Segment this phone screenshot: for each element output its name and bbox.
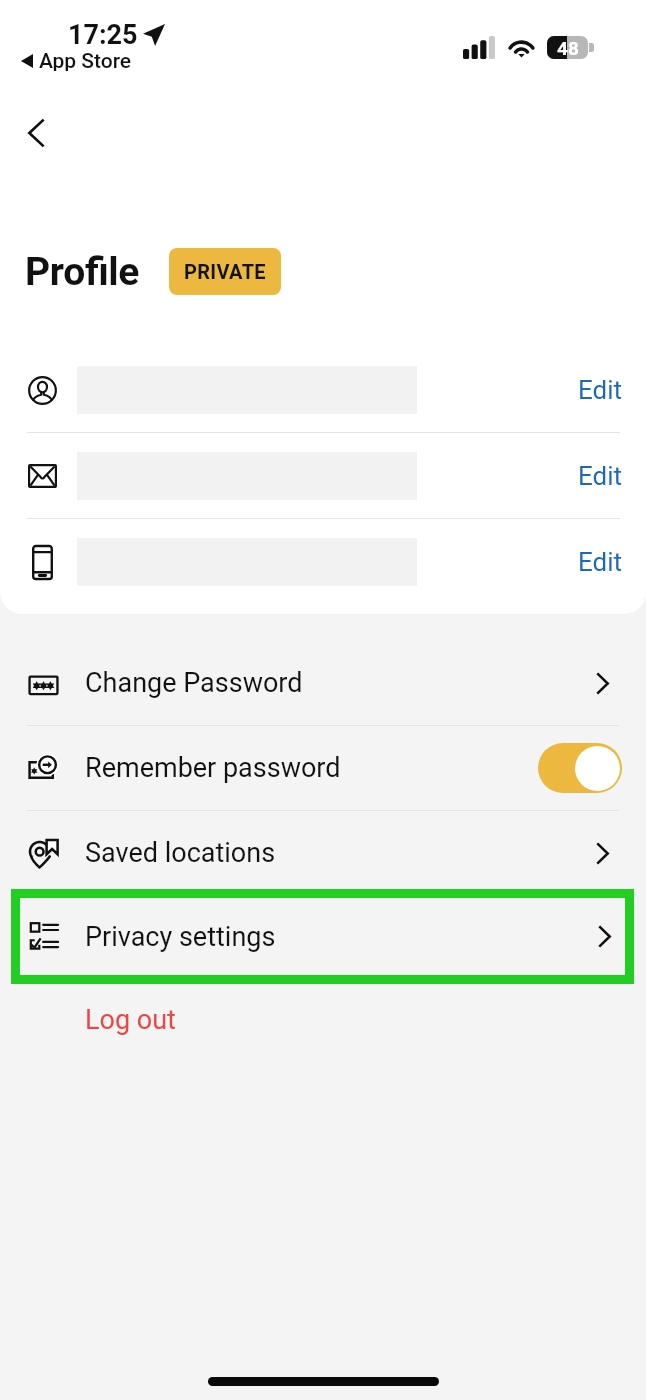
button[interactable]: Change Password — [0, 641, 646, 725]
button[interactable]: Edit — [578, 375, 623, 405]
button[interactable]: Edit — [578, 461, 623, 491]
staticText: 17:25 — [68, 19, 138, 47]
button[interactable]: Remember password — [0, 726, 646, 810]
staticText: PRIVATE — [184, 260, 266, 283]
staticText: Log out — [85, 1004, 176, 1036]
staticText: Change Password — [85, 667, 303, 699]
button[interactable]: Edit — [578, 547, 623, 577]
staticText: Saved locations — [85, 837, 276, 869]
staticText: Privacy settings — [85, 921, 276, 953]
button[interactable]: PRIVATE — [169, 248, 281, 295]
button[interactable]: Privacy settings — [20, 898, 625, 975]
staticText: Profile — [25, 249, 140, 295]
button[interactable]: Edit — [0, 433, 646, 518]
button[interactable]: Edit — [0, 347, 646, 432]
button[interactable]: Remember password toggle — [538, 743, 622, 793]
staticText: 48 — [557, 37, 579, 59]
button[interactable]: Log out — [85, 998, 176, 1042]
other: Open Saved locations — [596, 837, 622, 869]
other: Open Change Password — [596, 667, 622, 699]
button[interactable]: Back — [8, 105, 64, 161]
button[interactable]: Saved locations — [0, 811, 646, 895]
button[interactable]: Edit — [0, 519, 646, 604]
staticText: App Store — [39, 49, 132, 71]
staticText: Remember password — [85, 752, 341, 784]
